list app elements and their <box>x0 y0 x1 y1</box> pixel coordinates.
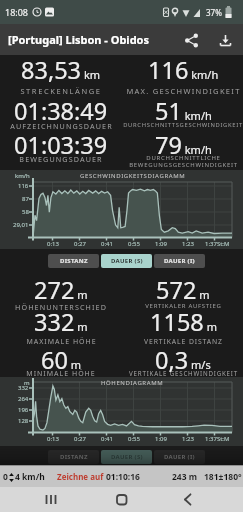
staticText: STRECKENLÄNGE <box>20 86 102 96</box>
staticText: 0,3 m/s <box>155 344 211 376</box>
staticText: 58 <box>22 208 29 216</box>
staticText: 0:13 <box>47 435 59 443</box>
staticText: DAUER (I) <box>164 257 195 265</box>
staticText: VERTIKALER AUFSTIEG <box>145 302 222 310</box>
staticText: 1:09 <box>155 240 167 248</box>
staticText: 1:37St:M <box>205 435 230 443</box>
staticText: 1:23 <box>182 435 194 443</box>
staticText: 79 km/h <box>155 129 212 161</box>
staticText: DURCHSCHNITTSGESCHWINDIGKEIT <box>123 121 243 129</box>
button[interactable]: DAUER (I) <box>154 254 205 268</box>
staticText: 332 <box>18 384 29 392</box>
staticText: 243 m <box>172 471 198 483</box>
staticText: DISTANZ <box>60 257 88 265</box>
staticText: BEWEGUNGSDAUER <box>19 154 103 164</box>
staticText: 116 <box>18 182 29 190</box>
staticText: 0:41 <box>101 435 113 443</box>
staticText: 0:13 <box>47 240 59 248</box>
staticText: 87 <box>22 195 29 203</box>
staticText: 01:10:16 <box>106 471 140 483</box>
staticText: 0:41 <box>101 240 113 248</box>
staticText: 0 <box>3 471 8 483</box>
staticText: DAUER (I) <box>164 453 195 461</box>
staticText: 29,01 <box>13 221 29 229</box>
button[interactable] <box>215 30 235 50</box>
staticText: 0:27 <box>74 435 86 443</box>
staticText: 116 km/h <box>148 54 219 86</box>
staticText: GESCHWINDIGKEITSDIAGRAMM <box>80 172 186 180</box>
staticText: 51 km/h <box>155 95 212 127</box>
staticText: 01:38:49 <box>14 95 108 127</box>
staticText: 37% <box>206 7 222 18</box>
button[interactable]: DISTANZ <box>48 254 99 268</box>
staticText: HÖHENUNTERSCHIED <box>15 302 107 312</box>
staticText: km/h <box>15 172 30 180</box>
staticText: m <box>24 379 30 387</box>
button[interactable]: DISTANZ <box>48 450 99 464</box>
staticText: 572 m <box>156 274 210 306</box>
staticText: DURCHSCHNITTLICHE BEWEGUNGSGESCHWINDIGKE… <box>129 154 238 169</box>
staticText: 1:37St:M <box>205 240 230 248</box>
staticText: Zeichne auf <box>57 471 104 482</box>
staticText: 128 <box>18 417 29 425</box>
staticText: 1:23 <box>182 240 194 248</box>
staticText: 18:08 <box>5 6 29 18</box>
staticText: 83,53 km <box>21 54 101 86</box>
staticText: DISTANZ <box>60 453 88 461</box>
staticText: DAUER (S) <box>111 453 143 461</box>
staticText: 272 m <box>34 274 88 306</box>
button[interactable] <box>181 30 201 50</box>
staticText: 196 <box>18 406 29 414</box>
button[interactable]: DAUER (I) <box>154 450 205 464</box>
staticText: 181±180° <box>204 471 242 483</box>
staticText: MAXIMALE HÖHE <box>26 337 97 347</box>
staticText: VERTIKALE GESCHWINDIGKEIT <box>129 369 238 377</box>
staticText: 1158 m <box>150 306 217 338</box>
staticText: 0:27 <box>74 240 86 248</box>
staticText: 264 <box>18 395 29 403</box>
button[interactable]: DAUER (S) <box>101 254 152 268</box>
staticText: VERTIKALE DISTANZ <box>144 337 223 346</box>
staticText: 0:55 <box>128 435 140 443</box>
staticText: AUFZEICHNUNGSDAUER <box>10 121 113 131</box>
staticText: DAUER (S) <box>111 257 143 265</box>
staticText: 332 m <box>34 306 88 338</box>
staticText: 1:09 <box>155 435 167 443</box>
staticText: [Portugal] Lisbon - Obidos <box>8 32 149 47</box>
staticText: 4 km/h <box>15 471 45 483</box>
staticText: HÖHENDIAGRAMM <box>101 379 164 387</box>
staticText: 0:55 <box>128 240 140 248</box>
staticText: 60 m <box>41 344 82 376</box>
staticText: MINIMALE HÖHE <box>26 369 96 379</box>
staticText: MAX. GESCHWINDIGKEIT <box>126 86 241 96</box>
button[interactable]: DAUER (S) <box>101 450 152 464</box>
staticText: 01:03:39 <box>14 129 108 161</box>
